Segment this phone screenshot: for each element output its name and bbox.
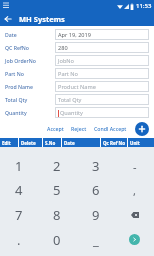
staticText: Date [64,140,75,146]
staticText: 2 [53,157,61,175]
staticText: JobNo [58,57,74,65]
button[interactable]: Condl Accept [93,123,128,134]
staticText: . [17,231,21,249]
button[interactable]: _ [76,227,115,252]
button[interactable]: Dash [115,154,154,178]
staticText: Condl Accept [94,125,127,132]
button[interactable]: 0 [38,227,76,252]
staticText: 9 [92,206,100,224]
staticText: Edit [2,140,11,146]
staticText: S.No [45,140,56,146]
staticText: Unit Name [130,140,154,146]
staticText: 1 [15,157,23,175]
button[interactable]: JobNo [55,55,149,66]
button[interactable]: 7 [0,202,38,227]
button[interactable]: 9 [76,202,115,227]
staticText: Quantity [60,109,83,117]
staticText: 8 [53,206,61,224]
button[interactable]: 280 [55,42,149,53]
staticText: 0 [53,231,61,249]
button[interactable]: Accept [46,123,65,134]
staticText: 11:53 [136,2,152,10]
button[interactable]: Total Qty [55,94,149,105]
staticText: Job OrderNo [5,57,36,64]
staticText: Part No [58,70,78,78]
button[interactable]: Comma [115,178,154,202]
button[interactable]: Enter [115,227,154,252]
staticText: Qc Ref No [103,140,126,146]
staticText: Apr 19, 2019 [58,31,91,39]
staticText: Total Qty [58,96,82,104]
button[interactable]: 6 [76,178,115,202]
staticText: Accept [47,125,64,132]
staticText: , [133,183,136,198]
staticText: - [133,159,137,174]
staticText: _ [93,231,99,249]
staticText: 7 [15,206,23,224]
button[interactable]: 3 [76,154,115,178]
staticText: Prod Name [5,83,33,90]
button[interactable]: Quantity [55,107,149,118]
staticText: Quantity [5,109,27,116]
button[interactable]: Backspace [115,202,154,227]
staticText: Delete [21,140,36,146]
button[interactable]: 1 [0,154,38,178]
staticText: 5 [53,181,61,199]
button[interactable]: Add [135,122,149,136]
button[interactable]: 5 [38,178,76,202]
staticText: Reject [71,125,87,132]
staticText: Date [5,31,17,38]
button[interactable]: 4 [0,178,38,202]
button[interactable]: Back [0,11,16,26]
staticText: 280 [58,44,68,52]
button[interactable]: 8 [38,202,76,227]
staticText: Total Qty [5,96,28,103]
staticText: 6 [92,181,100,199]
staticText: QC RefNo [5,44,30,51]
button[interactable]: Product Name [55,81,149,92]
staticText: 4 [15,181,23,199]
button[interactable]: . [0,227,38,252]
staticText: Product Name [58,83,96,91]
staticText: Part No [5,70,24,77]
button[interactable]: Apr 19, 2019 [55,29,149,40]
staticText: 3 [92,157,100,175]
button[interactable]: 2 [38,154,76,178]
staticText: MH Systems [19,14,65,24]
button[interactable]: Part No [55,68,149,79]
button[interactable]: Reject [70,123,88,134]
